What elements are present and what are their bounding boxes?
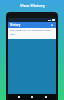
button[interactable]: You can see all your translation history — [8, 28, 56, 39]
button[interactable]: Home — [29, 94, 35, 100]
staticText: History — [10, 23, 21, 27]
staticText: here. — [10, 33, 16, 36]
button[interactable]: Back — [16, 94, 22, 100]
button[interactable]: History — [8, 22, 56, 28]
staticText: You can see all your translation history — [10, 29, 52, 32]
staticText: View History — [20, 3, 45, 9]
button[interactable]: Recents — [43, 94, 49, 100]
button[interactable]: Delete history — [50, 23, 54, 27]
